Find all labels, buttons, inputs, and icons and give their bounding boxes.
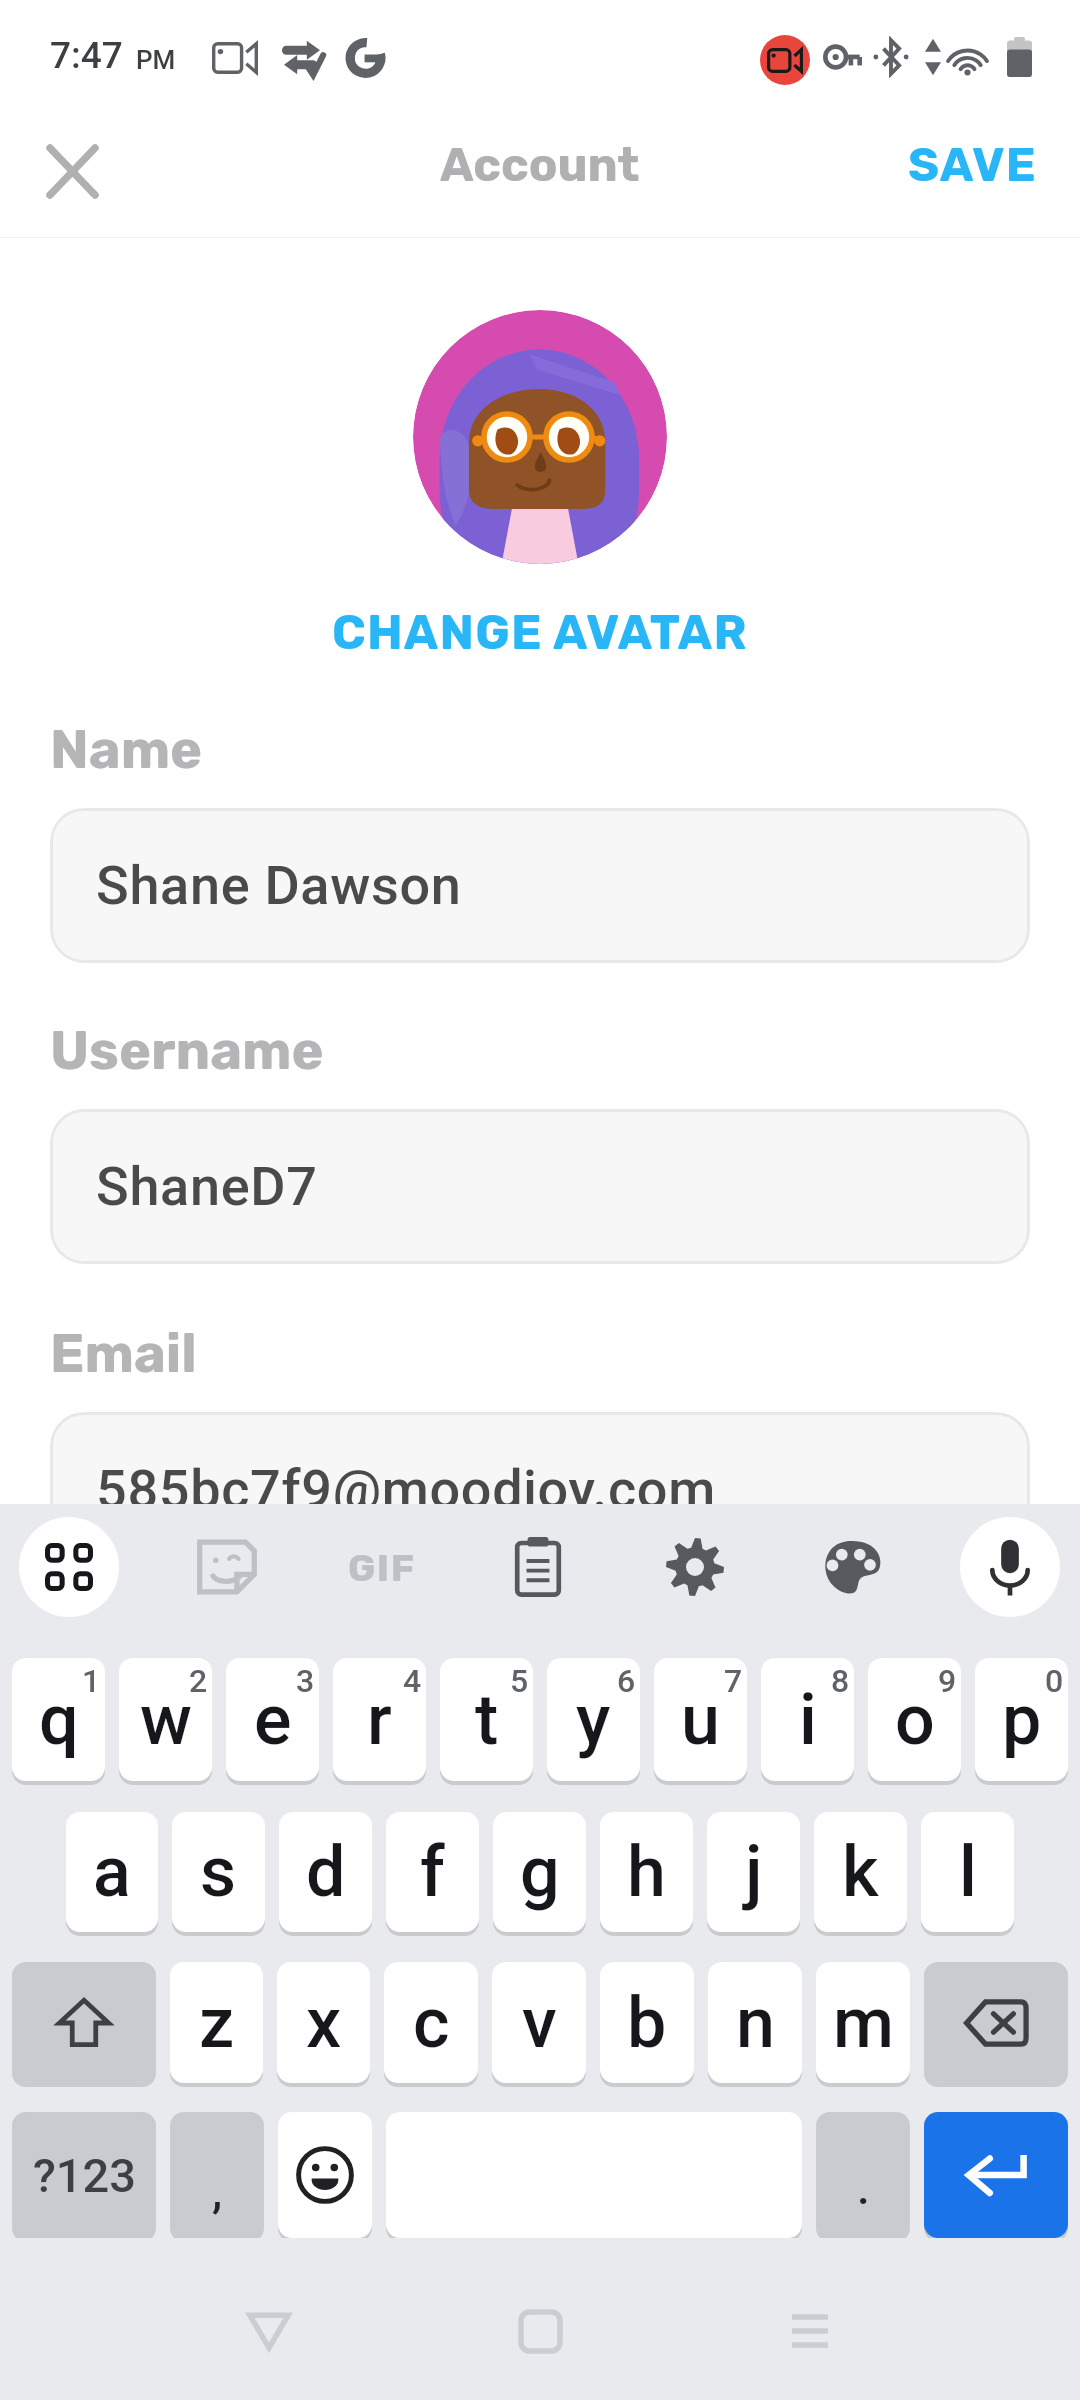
staticText: 8 — [831, 1662, 850, 1700]
staticText: 7:47 — [50, 34, 123, 77]
staticText: w — [140, 1679, 192, 1761]
staticText: b — [627, 1982, 667, 2064]
staticText: a — [93, 1831, 131, 1913]
staticText: 5 — [510, 1662, 529, 1700]
button[interactable]: n — [708, 1962, 802, 2083]
button[interactable]: j — [707, 1812, 800, 1932]
staticText: 9 — [938, 1662, 957, 1700]
staticText: m — [833, 1982, 894, 2064]
staticText: s — [200, 1831, 237, 1913]
staticText: u — [681, 1679, 720, 1761]
button[interactable]: . — [816, 2112, 910, 2238]
button[interactable]: ShaneD7 — [50, 1109, 1030, 1264]
button[interactable]: x — [277, 1962, 370, 2083]
staticText: e — [254, 1679, 292, 1761]
staticText: ShaneD7 — [96, 1155, 318, 1218]
button[interactable]: z — [170, 1962, 263, 2083]
staticText: CHANGE AVATAR — [332, 604, 748, 661]
button[interactable]: f — [386, 1812, 479, 1932]
staticText: Shane Dawson — [96, 854, 462, 917]
button[interactable]: g — [493, 1812, 586, 1932]
button[interactable]: 585bc7f9@moodjoy.com — [50, 1412, 1030, 1567]
staticText: q — [39, 1679, 79, 1761]
button[interactable]: Backspace — [924, 1962, 1068, 2083]
staticText: 0 — [1045, 1662, 1064, 1700]
button[interactable]: p — [975, 1658, 1068, 1781]
button[interactable]: Shift — [12, 1962, 156, 2083]
button[interactable]: m — [816, 1962, 910, 2083]
staticText: g — [520, 1831, 560, 1913]
button[interactable]: d — [279, 1812, 372, 1932]
button[interactable]: l — [921, 1812, 1014, 1932]
staticText: n — [736, 1982, 775, 2064]
staticText: PM — [136, 45, 176, 75]
staticText: y — [576, 1679, 611, 1761]
button[interactable]: o — [868, 1658, 961, 1781]
button[interactable]: v — [492, 1962, 586, 2083]
button[interactable]: CHANGE AVATAR — [316, 598, 764, 667]
button[interactable]: Enter — [924, 2112, 1068, 2238]
button[interactable]: r — [333, 1658, 426, 1781]
button[interactable]: b — [600, 1962, 694, 2083]
staticText: h — [627, 1831, 666, 1913]
staticText: o — [895, 1679, 935, 1761]
button[interactable]: u — [654, 1658, 747, 1781]
button[interactable]: Recent apps — [750, 2271, 870, 2391]
staticText: 6 — [617, 1662, 636, 1700]
staticText: v — [522, 1982, 557, 2064]
staticText: f — [420, 1831, 445, 1913]
button[interactable]: Home — [480, 2271, 600, 2391]
button[interactable]: Close — [24, 123, 120, 219]
staticText: 4 — [403, 1662, 422, 1700]
staticText: , — [212, 2164, 223, 2218]
button[interactable]: Keyboard modes — [19, 1517, 119, 1617]
staticText: c — [413, 1982, 450, 2064]
button[interactable]: Clipboard — [488, 1517, 588, 1617]
staticText: 7 — [724, 1662, 743, 1700]
button[interactable]: c — [384, 1962, 478, 2083]
staticText: r — [367, 1679, 392, 1761]
button[interactable]: , — [170, 2112, 264, 2238]
staticText: 585bc7f9@moodjoy.com — [96, 1458, 716, 1521]
button[interactable]: Themes — [802, 1517, 902, 1617]
staticText: SAVE — [908, 137, 1038, 193]
button[interactable]: t — [440, 1658, 533, 1781]
button[interactable]: Emoji — [278, 2112, 372, 2238]
button[interactable]: Voice input — [960, 1517, 1060, 1617]
staticText: GIF — [348, 1545, 416, 1590]
staticText: . — [857, 2161, 870, 2215]
staticText: 3 — [296, 1662, 315, 1700]
staticText: j — [745, 1831, 763, 1913]
staticText: ?123 — [33, 2148, 136, 2203]
button[interactable]: Settings — [645, 1517, 745, 1617]
staticText: d — [306, 1831, 346, 1913]
staticText: 1 — [82, 1662, 101, 1700]
staticText: z — [199, 1982, 235, 2064]
staticText: x — [306, 1982, 342, 2064]
staticText: t — [475, 1679, 499, 1761]
button[interactable]: Back — [209, 2271, 329, 2391]
button[interactable]: q — [12, 1658, 105, 1781]
button[interactable]: s — [172, 1812, 265, 1932]
staticText: Name — [50, 718, 203, 782]
button[interactable]: ?123 — [12, 2112, 156, 2238]
button[interactable]: Stickers — [177, 1517, 277, 1617]
button[interactable]: y — [547, 1658, 640, 1781]
button[interactable]: k — [814, 1812, 907, 1932]
staticText: l — [959, 1831, 977, 1913]
staticText: k — [842, 1831, 879, 1913]
button[interactable]: SAVE — [888, 125, 1058, 205]
button[interactable]: a — [66, 1812, 158, 1932]
button[interactable]: Shane Dawson — [50, 808, 1030, 963]
button[interactable]: e — [226, 1658, 319, 1781]
staticText: Account — [440, 137, 640, 193]
staticText: Username — [50, 1019, 324, 1083]
button[interactable]: h — [600, 1812, 693, 1932]
staticText: 2 — [189, 1662, 208, 1700]
button[interactable]: GIF — [332, 1517, 432, 1617]
staticText: p — [1002, 1679, 1042, 1761]
staticText: i — [799, 1679, 817, 1761]
button[interactable]: w — [119, 1658, 212, 1781]
button[interactable]: i — [761, 1658, 854, 1781]
